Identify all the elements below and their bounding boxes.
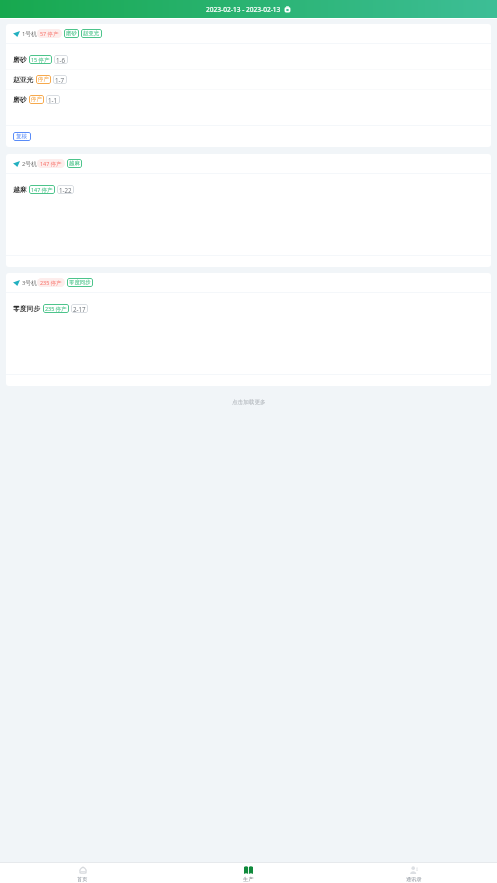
button[interactable]: Contacts: [331, 863, 497, 883]
staticText: 1-1: [48, 96, 58, 104]
button[interactable]: Select date: [284, 6, 291, 13]
staticText: 零度同步: [69, 279, 91, 286]
staticText: 1-22: [59, 186, 72, 194]
button[interactable]: 3号机: [6, 273, 491, 292]
button[interactable]: 磨砂: [6, 50, 491, 69]
other: Contacts: [410, 866, 418, 874]
staticText: 2023-02-13 - 2023-02-13: [206, 5, 281, 14]
staticText: 越麻: [13, 185, 27, 194]
button[interactable]: 磨砂: [6, 90, 491, 109]
other: Production: [244, 866, 253, 874]
staticText: 147 停产: [40, 160, 62, 167]
staticText: 15 停产: [31, 56, 50, 63]
staticText: 首页: [77, 876, 88, 883]
staticText: 停产: [31, 96, 42, 103]
staticText: 1-6: [56, 56, 66, 64]
button[interactable]: 赵亚光: [6, 70, 491, 89]
staticText: 3号机: [22, 279, 37, 287]
staticText: 2-17: [73, 305, 86, 313]
staticText: 2号机: [22, 160, 37, 168]
staticText: 1号机: [22, 30, 37, 38]
staticText: 235 停产: [40, 279, 62, 286]
staticText: 235 停产: [45, 305, 67, 312]
staticText: 磨砂: [13, 95, 27, 104]
staticText: 复核: [16, 133, 28, 140]
button[interactable]: Production: [165, 863, 331, 883]
staticText: 赵亚光: [83, 30, 100, 37]
staticText: 通讯录: [406, 876, 422, 883]
button[interactable]: 越麻: [6, 180, 491, 199]
staticText: 磨砂: [66, 30, 77, 37]
staticText: 57 停产: [40, 30, 59, 37]
staticText: 1-7: [55, 76, 65, 84]
button[interactable]: 零度同步: [6, 299, 491, 318]
button[interactable]: 2号机: [6, 154, 491, 173]
staticText: 越麻: [69, 160, 80, 167]
button[interactable]: Home: [0, 863, 165, 883]
other: Home: [79, 866, 87, 874]
staticText: 磨砂: [13, 55, 27, 64]
button[interactable]: 点击加载更多: [232, 399, 266, 406]
staticText: 停产: [38, 76, 49, 83]
staticText: 零度同步: [13, 304, 41, 313]
staticText: 147 停产: [31, 186, 53, 193]
button[interactable]: 1号机: [6, 24, 491, 43]
staticText: 赵亚光: [13, 75, 34, 84]
staticText: 生产: [243, 876, 254, 883]
